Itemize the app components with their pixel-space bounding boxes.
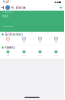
button[interactable]: Notifications: [59, 6, 63, 10]
staticText: Cards: [37, 54, 42, 56]
staticText: Hi, Alex Tan: [11, 6, 26, 9]
staticText: Tap to view details: [2, 25, 13, 27]
staticText: Gifts: [7, 54, 9, 56]
button[interactable]: Top up: [48, 37, 64, 43]
staticText: Quick services: [5, 33, 23, 36]
button[interactable]: Cards: [32, 50, 48, 56]
button[interactable]: Share: [1, 6, 4, 9]
staticText: Rewards: [5, 46, 15, 49]
staticText: Pay: [6, 41, 9, 43]
staticText: Help: [54, 54, 57, 56]
button[interactable]: Send: [16, 37, 32, 43]
button[interactable]: Gifts: [0, 50, 16, 56]
staticText: 9:41: [3, 0, 10, 4]
button[interactable]: Scan: [32, 37, 48, 43]
button[interactable]: Pay: [0, 37, 16, 43]
staticText: Available balance: [2, 11, 14, 13]
button[interactable]: Deals: [16, 50, 32, 56]
staticText: Deals: [22, 54, 26, 56]
button[interactable]: Help: [48, 50, 64, 56]
